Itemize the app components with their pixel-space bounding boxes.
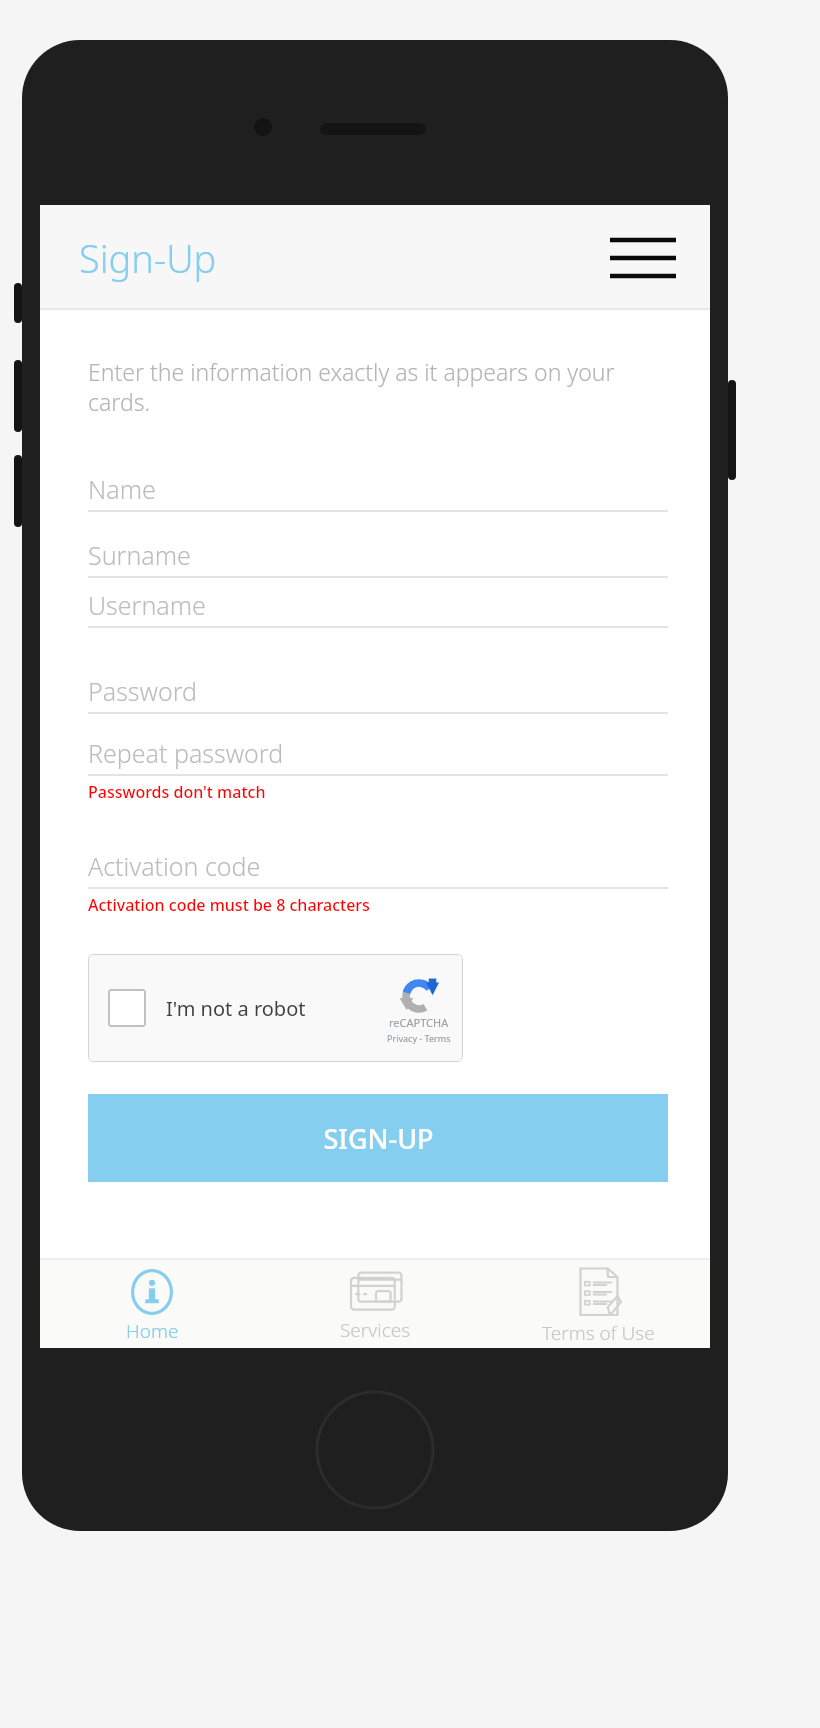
- button[interactable]: I'm not a robot: [88, 954, 463, 1062]
- staticText: Privacy - Terms: [387, 1032, 451, 1044]
- staticText: Terms of Use: [542, 1320, 655, 1346]
- other: Services: [350, 1270, 402, 1314]
- staticText: Username: [88, 588, 206, 622]
- button[interactable]: Password: [88, 670, 668, 714]
- staticText: Sign-Up: [79, 232, 217, 284]
- staticText: SIGN-UP: [323, 1120, 434, 1157]
- other: Terms of Use: [577, 1267, 621, 1317]
- staticText: Surname: [88, 538, 191, 572]
- staticText: Name: [88, 472, 156, 506]
- staticText: I'm not a robot: [166, 995, 306, 1022]
- button[interactable]: Services: [264, 1260, 487, 1348]
- button[interactable]: Activation code: [88, 845, 668, 889]
- button[interactable]: Menu: [600, 222, 686, 294]
- button[interactable]: Surname: [88, 534, 668, 578]
- staticText: Services: [340, 1317, 411, 1343]
- button[interactable]: Repeat password: [88, 732, 668, 776]
- staticText: Activation code must be 8 characters: [88, 894, 370, 916]
- staticText: Repeat password: [88, 736, 284, 770]
- button[interactable]: Name: [88, 468, 668, 512]
- staticText: Enter the information exactly as it appe…: [88, 356, 668, 418]
- staticText: Home: [126, 1318, 179, 1344]
- staticText: reCAPTCHA: [389, 1015, 449, 1030]
- other: Home: [131, 1269, 173, 1315]
- staticText: Password: [88, 674, 197, 708]
- button[interactable]: Terms of Use: [487, 1260, 710, 1348]
- button[interactable]: SIGN-UP: [88, 1094, 668, 1182]
- button[interactable]: Username: [88, 584, 668, 628]
- button[interactable]: Home: [40, 1260, 264, 1348]
- staticText: Passwords don't match: [88, 781, 266, 803]
- staticText: Activation code: [88, 849, 261, 883]
